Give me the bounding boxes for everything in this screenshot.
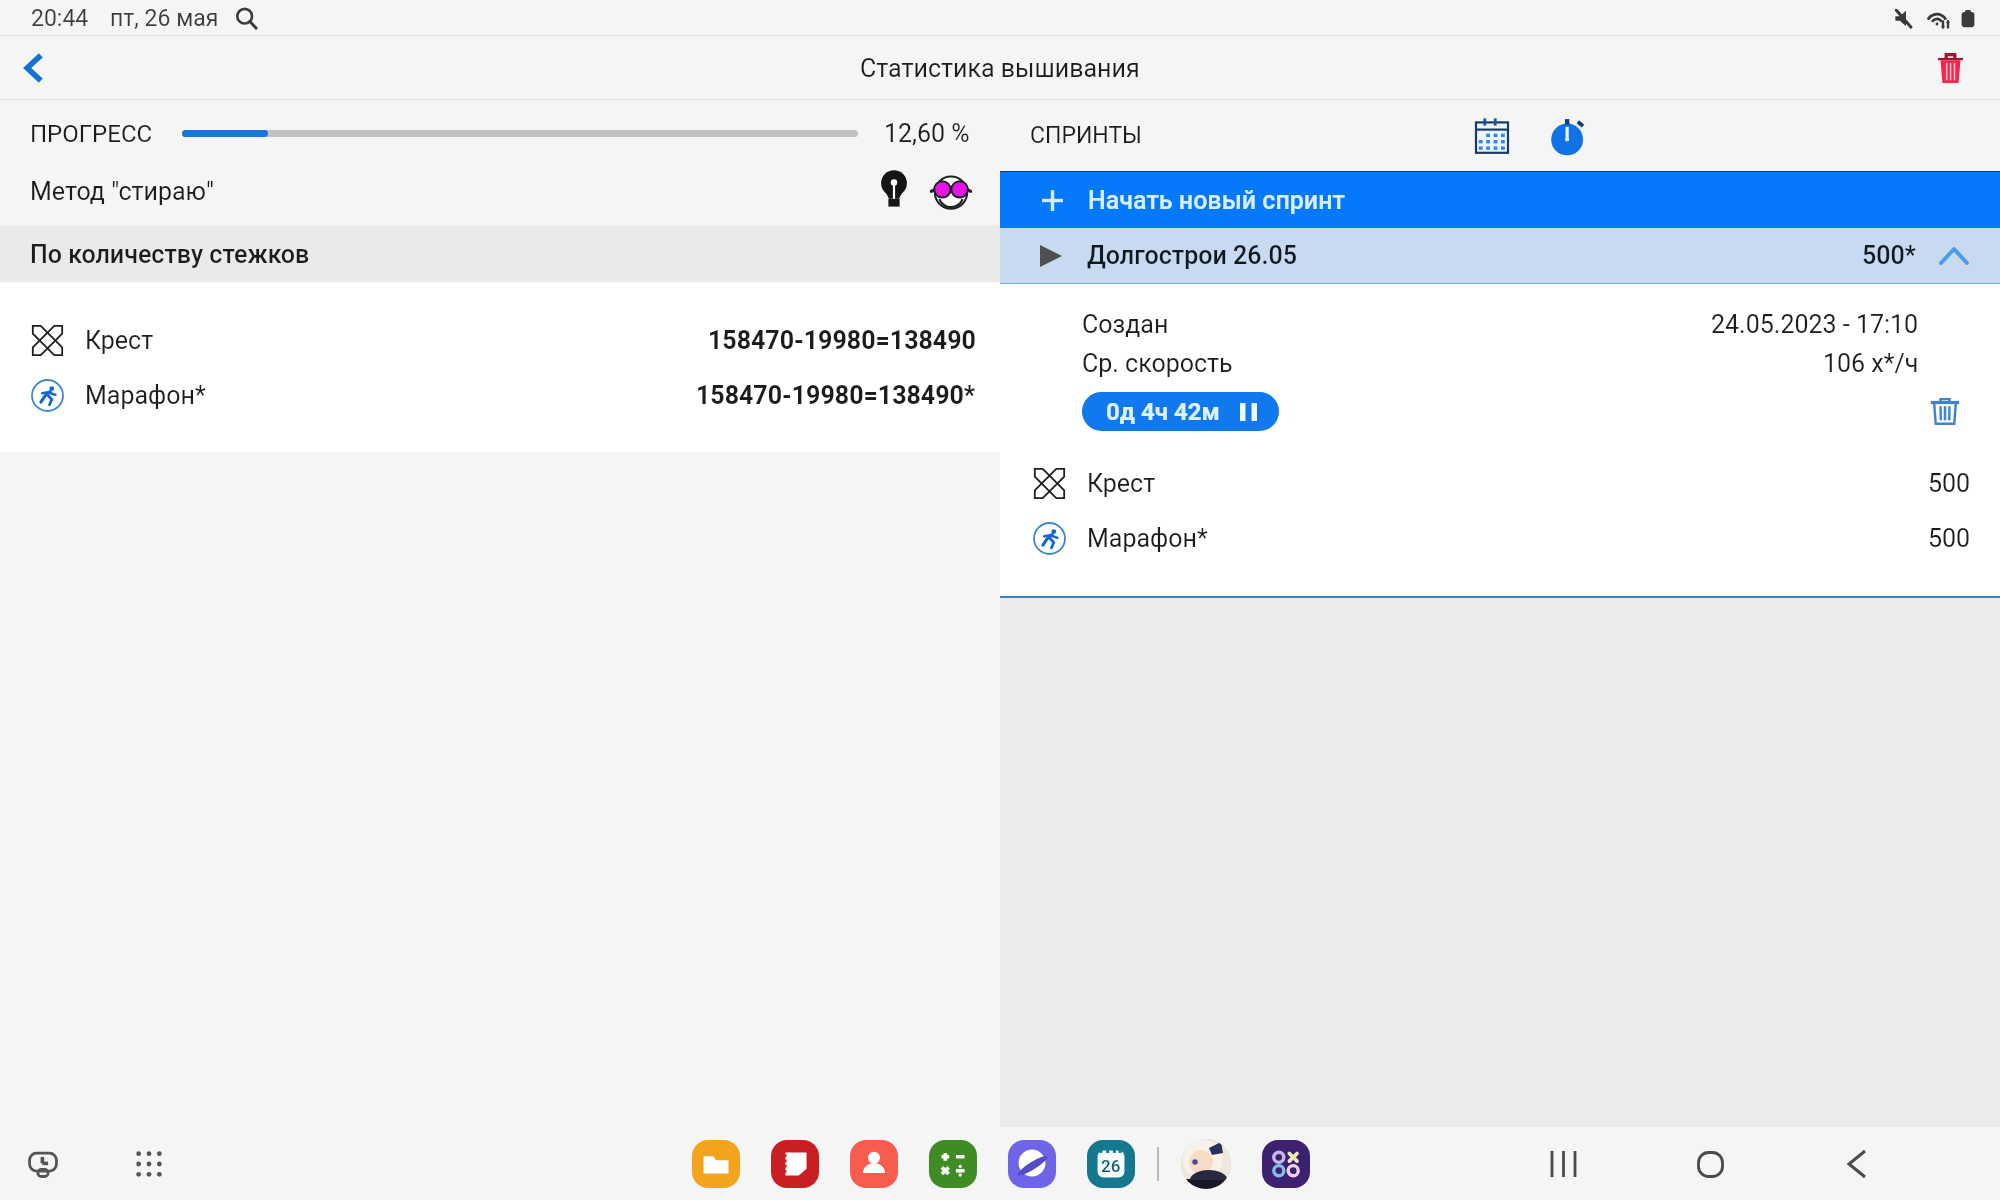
staticText: 158470-19980=138490 <box>708 326 976 355</box>
staticText: По количеству стежков <box>30 240 310 269</box>
button[interactable]: Internet <box>1008 1140 1056 1188</box>
button[interactable]: Долгострои 26.05 <box>1000 228 2000 283</box>
button[interactable]: Calculator <box>929 1140 977 1188</box>
staticText: Крест <box>85 326 154 355</box>
staticText: пт, 26 мая <box>110 5 219 32</box>
staticText: 0д 4ч 42м <box>1106 398 1220 426</box>
staticText: Марафон* <box>1087 524 1208 553</box>
button[interactable]: Calendar app <box>1087 1140 1135 1188</box>
button[interactable]: Game profile <box>1181 1139 1231 1189</box>
button[interactable]: Home <box>1679 1133 1741 1195</box>
staticText: Долгострои 26.05 <box>1087 241 1297 270</box>
button[interactable]: Крест <box>1000 456 2000 511</box>
staticText: 20:44 <box>31 5 89 32</box>
button[interactable]: Марафон* <box>1000 511 2000 566</box>
staticText: 158470-19980=138490* <box>696 381 976 410</box>
button[interactable]: ПРОГРЕСС <box>0 100 1000 167</box>
button[interactable]: Pause sprint timer <box>1082 392 1279 431</box>
button[interactable]: Timer <box>1541 110 1593 162</box>
staticText: Статистика вышивания <box>860 54 1140 83</box>
staticText: 500 <box>1928 524 1971 553</box>
button[interactable]: Начать новый спринт <box>1000 172 2000 228</box>
staticText: 106 х*/ч <box>1823 349 1919 378</box>
button[interactable]: Марафон* <box>0 368 1000 423</box>
button[interactable]: Delete <box>1924 42 1976 94</box>
button[interactable]: Back <box>8 42 60 94</box>
button[interactable]: Delete sprint <box>1920 386 1970 436</box>
button[interactable]: Recent apps <box>18 1139 68 1189</box>
button[interactable]: Search <box>233 5 259 31</box>
button[interactable]: Game Launcher <box>1262 1140 1310 1188</box>
staticText: Создан <box>1082 310 1169 339</box>
button[interactable]: Notes <box>771 1140 819 1188</box>
staticText: Марафон* <box>85 381 206 410</box>
button[interactable]: Back <box>1826 1133 1888 1195</box>
staticText: 24.05.2023 - 17:10 <box>1711 310 1919 339</box>
staticText: 500* <box>1862 241 1916 270</box>
button[interactable]: App drawer <box>124 1139 174 1189</box>
button[interactable]: Recents <box>1532 1133 1594 1195</box>
staticText: ПРОГРЕСС <box>30 120 153 148</box>
staticText: 26 <box>1101 1156 1121 1176</box>
staticText: Крест <box>1087 469 1156 498</box>
staticText: 12,60 % <box>884 119 970 148</box>
button[interactable]: Contacts <box>850 1140 898 1188</box>
staticText: Начать новый спринт <box>1088 186 1345 215</box>
staticText: Ср. скорость <box>1082 349 1233 378</box>
staticText: 500 <box>1928 469 1971 498</box>
button[interactable]: Calendar <box>1467 111 1517 161</box>
button[interactable]: Метод "стираю" <box>0 167 1000 226</box>
staticText: Метод "стираю" <box>30 177 215 206</box>
button[interactable]: My Files <box>692 1140 740 1188</box>
staticText: СПРИНТЫ <box>1030 122 1142 149</box>
button[interactable]: Крест <box>0 313 1000 368</box>
